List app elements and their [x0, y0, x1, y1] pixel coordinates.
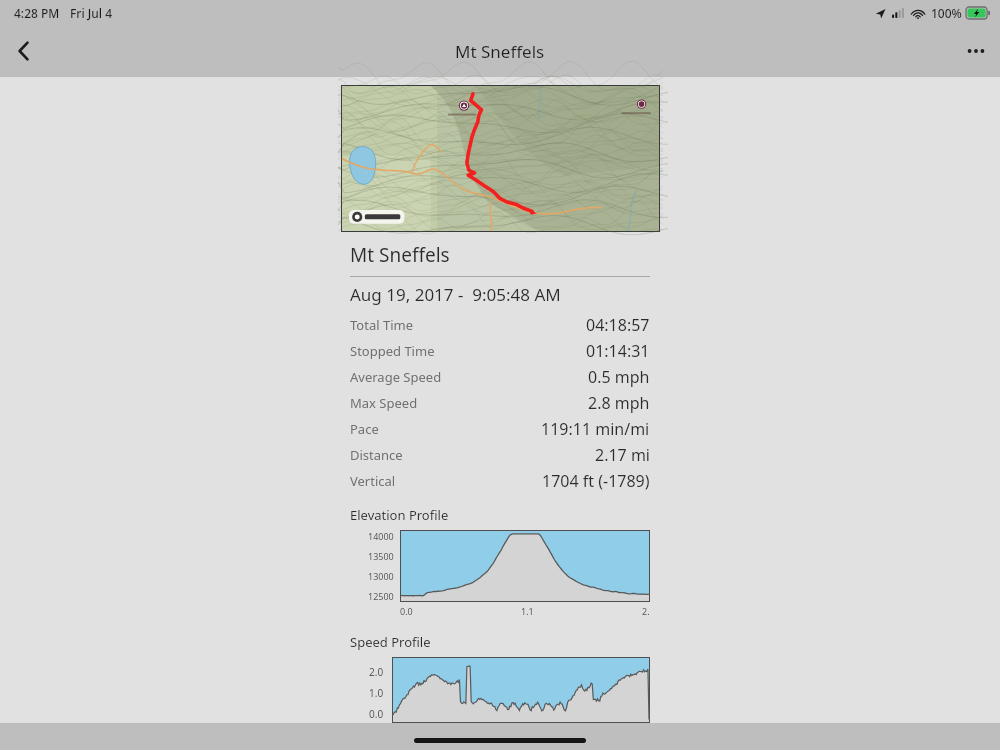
- staticText: 0.0: [369, 707, 384, 721]
- staticText: Fri Jul 4: [70, 5, 113, 21]
- staticText: 13500: [368, 550, 394, 562]
- staticText: 13000: [368, 570, 394, 582]
- staticText: 0.5 mph: [588, 366, 650, 388]
- staticText: Total Time: [350, 316, 413, 334]
- staticText: 1704 ft (-1789): [542, 470, 650, 492]
- staticText: Stopped Time: [350, 342, 435, 360]
- staticText: Pace: [350, 420, 379, 438]
- staticText: 12500: [368, 590, 394, 602]
- button[interactable]: Distance: [350, 442, 650, 468]
- button[interactable]: Speed profile chart: [393, 658, 649, 722]
- staticText: Distance: [350, 446, 403, 464]
- staticText: 2.8 mph: [588, 392, 650, 414]
- button[interactable]: Elevation profile chart: [401, 531, 649, 601]
- staticText: Mt Sneffels: [455, 40, 545, 63]
- button[interactable]: Total Time: [350, 312, 650, 338]
- staticText: Mt Sneffels: [350, 242, 450, 268]
- staticText: 119:11 min/mi: [541, 418, 650, 440]
- staticText: 100%: [931, 5, 962, 21]
- button[interactable]: Vertical: [350, 468, 650, 494]
- staticText: Average Speed: [350, 368, 442, 386]
- staticText: 2.17 mi: [595, 444, 650, 466]
- staticText: 4:28 PM: [14, 5, 60, 21]
- staticText: 14000: [368, 530, 394, 542]
- staticText: 1.1: [521, 605, 534, 617]
- staticText: Max Speed: [350, 394, 418, 412]
- staticText: 1.0: [369, 686, 384, 700]
- staticText: 2.0: [369, 665, 384, 679]
- button[interactable]: Max Speed: [350, 390, 650, 416]
- button[interactable]: Average Speed: [350, 364, 650, 390]
- staticText: 0.0: [400, 605, 413, 617]
- button[interactable]: More options: [952, 27, 1000, 75]
- button[interactable]: Pace: [350, 416, 650, 442]
- staticText: 01:14:31: [586, 340, 650, 362]
- staticText: Speed Profile: [350, 633, 431, 651]
- button[interactable]: Route map: [342, 86, 659, 231]
- button[interactable]: Back: [0, 27, 48, 75]
- staticText: 04:18:57: [586, 314, 650, 336]
- button[interactable]: Stopped Time: [350, 338, 650, 364]
- staticText: 2.: [642, 605, 650, 617]
- staticText: Vertical: [350, 472, 396, 490]
- staticText: Elevation Profile: [350, 506, 449, 524]
- staticText: Aug 19, 2017 - 9:05:48 AM: [350, 283, 561, 306]
